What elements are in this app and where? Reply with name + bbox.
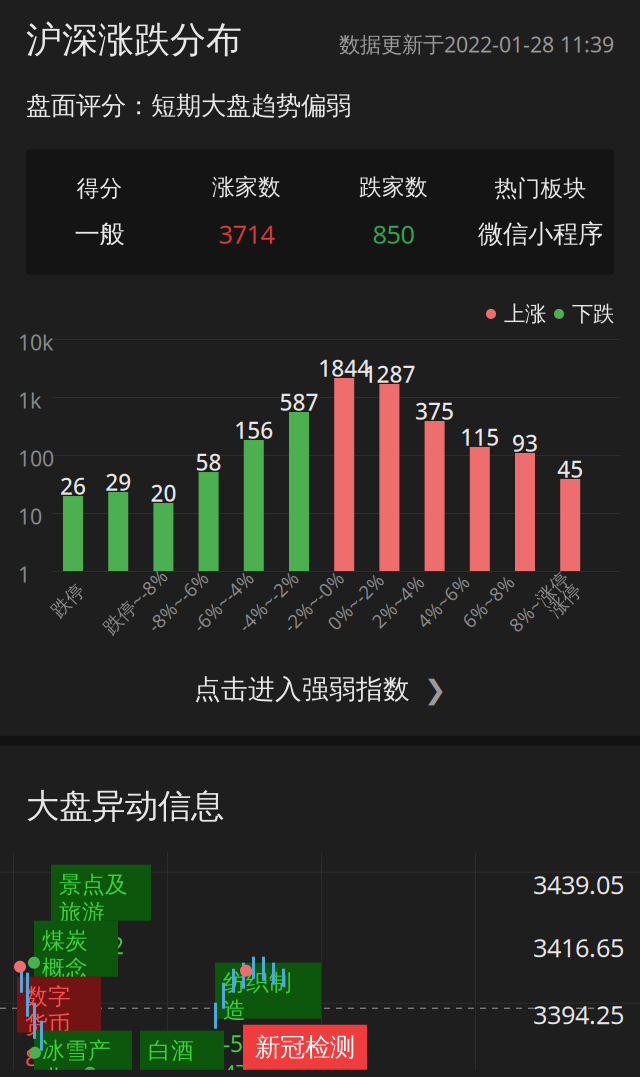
staticText: 大盘异动信息: [26, 786, 224, 827]
staticText: 45: [557, 454, 583, 484]
staticText: 20: [150, 478, 176, 508]
staticText: 3394.25: [533, 998, 624, 1031]
staticText: 10: [18, 502, 42, 530]
staticText: 93: [512, 428, 538, 458]
staticText: -1.17亿: [148, 1069, 200, 1077]
staticText: 115: [460, 422, 499, 452]
staticText: 29: [105, 467, 131, 497]
staticText: 热门板块: [494, 175, 586, 202]
staticText: 1: [18, 560, 30, 588]
staticText: 盘面评分：短期大盘趋势偏弱: [26, 90, 351, 121]
staticText: 10k: [18, 328, 53, 356]
staticText: -2%~-0%: [275, 589, 352, 614]
staticText: 下跌: [572, 301, 614, 327]
staticText: 3416.65: [533, 931, 624, 964]
staticText: 得分: [76, 175, 122, 202]
staticText: 2%~4%: [365, 589, 430, 614]
staticText: 3439.05: [533, 868, 624, 901]
staticText: -6%~-4%: [185, 589, 262, 614]
staticText: 6%~8%: [456, 589, 521, 614]
staticText: -32.92万: [59, 930, 124, 988]
staticText: 微信小程序: [478, 218, 603, 249]
staticText: 纺织制造: [223, 969, 292, 1024]
staticText: 一般: [74, 218, 124, 249]
staticText: 涨家数: [212, 173, 281, 201]
staticText: ❯: [424, 674, 446, 705]
staticText: 新冠检测: [255, 1032, 355, 1063]
staticText: 1287: [363, 359, 415, 389]
staticText: -5416.74万: [223, 1028, 301, 1077]
staticText: 数字货币: [25, 983, 71, 1038]
staticText: 0%~-2%: [320, 589, 391, 614]
staticText: -4%~-2%: [230, 589, 307, 614]
staticText: 跌家数: [359, 173, 428, 201]
staticText: 587: [279, 387, 318, 417]
staticText: 100: [18, 444, 54, 472]
staticText: 上涨: [504, 301, 546, 327]
staticText: 375: [415, 396, 454, 426]
staticText: -8%~-6%: [139, 589, 216, 614]
staticText: 跌停~-8%: [94, 589, 176, 614]
staticText: 1844: [318, 353, 370, 383]
staticText: 8%~涨停: [501, 589, 577, 614]
staticText: 1k: [18, 386, 41, 414]
staticText: 3714: [218, 217, 274, 251]
staticText: -7.90亿: [42, 986, 94, 1044]
staticText: 煤炭概念: [42, 927, 88, 982]
staticText: 涨停: [546, 589, 584, 612]
staticText: 4%~6%: [411, 589, 476, 614]
staticText: 26: [60, 471, 86, 501]
staticText: 8.77亿: [25, 1042, 93, 1072]
staticText: 冰雪产业: [42, 1037, 111, 1077]
staticText: 850: [372, 217, 414, 251]
staticText: 白酒: [148, 1037, 194, 1064]
staticText: 156: [234, 415, 273, 445]
staticText: 沪深涨跌分布: [26, 18, 242, 62]
staticText: 点击进入强弱指数: [194, 673, 410, 706]
button[interactable]: 点击进入强弱指数: [0, 659, 640, 720]
staticText: 数据更新于2022-01-28 11:39: [339, 30, 614, 58]
staticText: 58: [196, 447, 222, 477]
staticText: 跌停: [49, 589, 87, 612]
staticText: 景点及旅游: [59, 871, 128, 926]
